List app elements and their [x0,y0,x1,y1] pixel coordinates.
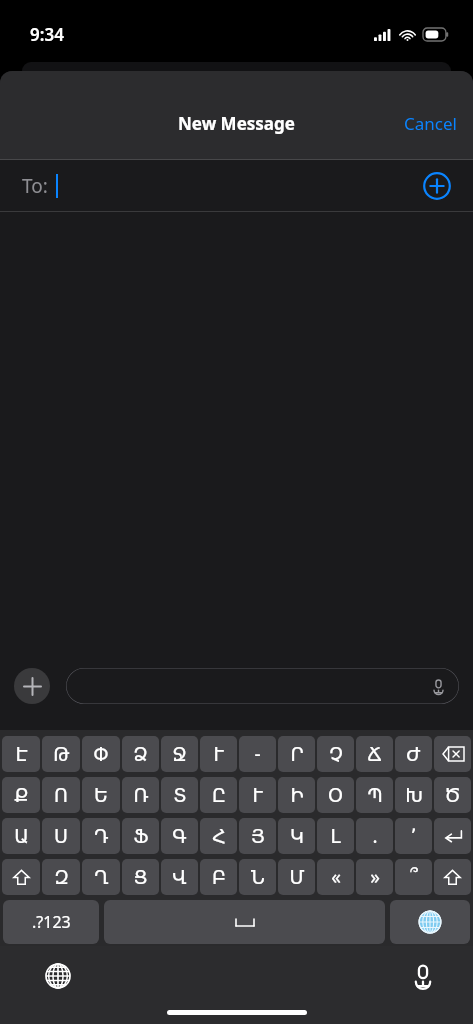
button[interactable]: Ե [82,777,120,813]
button[interactable]: - [239,736,276,772]
staticText: Չ [329,743,343,765]
button[interactable]: Թ [42,736,80,772]
staticText: Ժ [406,743,421,765]
button[interactable]: Յ [239,818,276,854]
staticText: To: [22,173,48,199]
button[interactable]: Օ [317,777,354,813]
button[interactable]: Add contact [415,164,459,208]
button[interactable]: « [317,859,354,895]
button[interactable]: Backspace [434,736,471,772]
button[interactable]: Return [434,818,471,854]
button[interactable] [104,900,385,944]
staticText: . [372,823,378,849]
button[interactable]: Ո [42,777,80,813]
staticText: Ւ [213,743,224,765]
button[interactable]: Զ [42,859,80,895]
button[interactable]: .?123 [3,900,99,944]
button[interactable]: Ց [122,859,159,895]
button[interactable]: Ջ [161,736,198,772]
other: Dictate [425,673,451,699]
button[interactable]: Dictation [403,956,443,996]
button[interactable]: ՚ [395,818,432,854]
button[interactable]: Cancel [388,104,473,143]
button[interactable]: Բ [200,859,237,895]
button[interactable]: Լ [317,818,354,854]
staticText: Մ [289,866,305,888]
staticText: - [254,741,261,767]
button[interactable]: Ւ [239,777,276,813]
button[interactable]: Ժ [395,736,432,772]
button[interactable]: Emoji [390,900,470,944]
staticText: Ա [14,825,29,847]
button[interactable]: Գ [161,818,198,854]
staticText: Cancel [404,112,457,135]
staticText: New Message [178,112,295,135]
staticText: Ո [54,784,68,806]
staticText: Փ [93,743,109,765]
button[interactable]: Ձ [122,736,159,772]
button[interactable]: Է [2,736,40,772]
button[interactable]: ՞ [395,859,432,895]
staticText: Թ [53,743,70,765]
staticText: Լ [330,825,341,847]
button[interactable]: Dictate [66,668,459,704]
staticText: ՞ [410,866,418,888]
staticText: « [331,864,341,890]
button[interactable]: Ի [278,777,315,813]
button[interactable]: » [356,859,393,895]
staticText: Ղ [94,866,109,888]
staticText: Ք [14,784,29,806]
staticText: Խ [405,784,423,806]
button[interactable]: Add attachment [14,668,50,704]
button[interactable]: Խ [395,777,432,813]
button[interactable]: Դ [82,818,120,854]
button[interactable]: Պ [356,777,393,813]
staticText: Ր [290,743,304,765]
staticText: Վ [172,866,187,888]
staticText: Կ [290,825,304,847]
staticText: » [370,864,380,890]
button[interactable]: Ղ [82,859,120,895]
button[interactable]: . [356,818,393,854]
button[interactable]: Ն [239,859,276,895]
button[interactable]: Հ [200,818,237,854]
staticText: Պ [367,784,383,806]
button[interactable]: Change keyboard [38,956,78,996]
staticText: Օ [328,784,343,806]
button[interactable]: Ր [278,736,315,772]
staticText: Յ [251,825,265,847]
button[interactable]: Ւ [200,736,237,772]
staticText: Ձ [133,743,148,765]
button[interactable]: Ք [2,777,40,813]
staticText: Զ [54,866,69,888]
staticText: 9:34 [30,23,64,46]
button[interactable]: Տ [161,777,198,813]
button[interactable]: Ը [200,777,237,813]
staticText: Գ [172,825,187,847]
staticText: Դ [94,825,109,847]
button[interactable]: Կ [278,818,315,854]
button[interactable]: Մ [278,859,315,895]
button[interactable]: Փ [82,736,120,772]
button[interactable]: Ֆ [122,818,159,854]
staticText: Ճ [367,743,382,765]
staticText: Ը [212,784,226,806]
staticText: Ջ [172,743,187,765]
staticText: Ն [251,866,265,888]
staticText: Ե [94,784,108,806]
staticText: ՚ [410,825,417,847]
button[interactable]: Ճ [356,736,393,772]
staticText: Ս [54,825,68,847]
staticText: Ծ [444,784,461,806]
button[interactable]: Վ [161,859,198,895]
button[interactable]: Shift [2,859,40,895]
button[interactable]: Չ [317,736,354,772]
button[interactable]: Ա [2,818,40,854]
staticText: Ի [290,784,304,806]
staticText: Ֆ [133,825,149,847]
button[interactable]: Ռ [122,777,159,813]
staticText: Բ [212,866,226,888]
button[interactable]: Shift [434,859,471,895]
button[interactable]: Ծ [434,777,471,813]
button[interactable]: Ս [42,818,80,854]
